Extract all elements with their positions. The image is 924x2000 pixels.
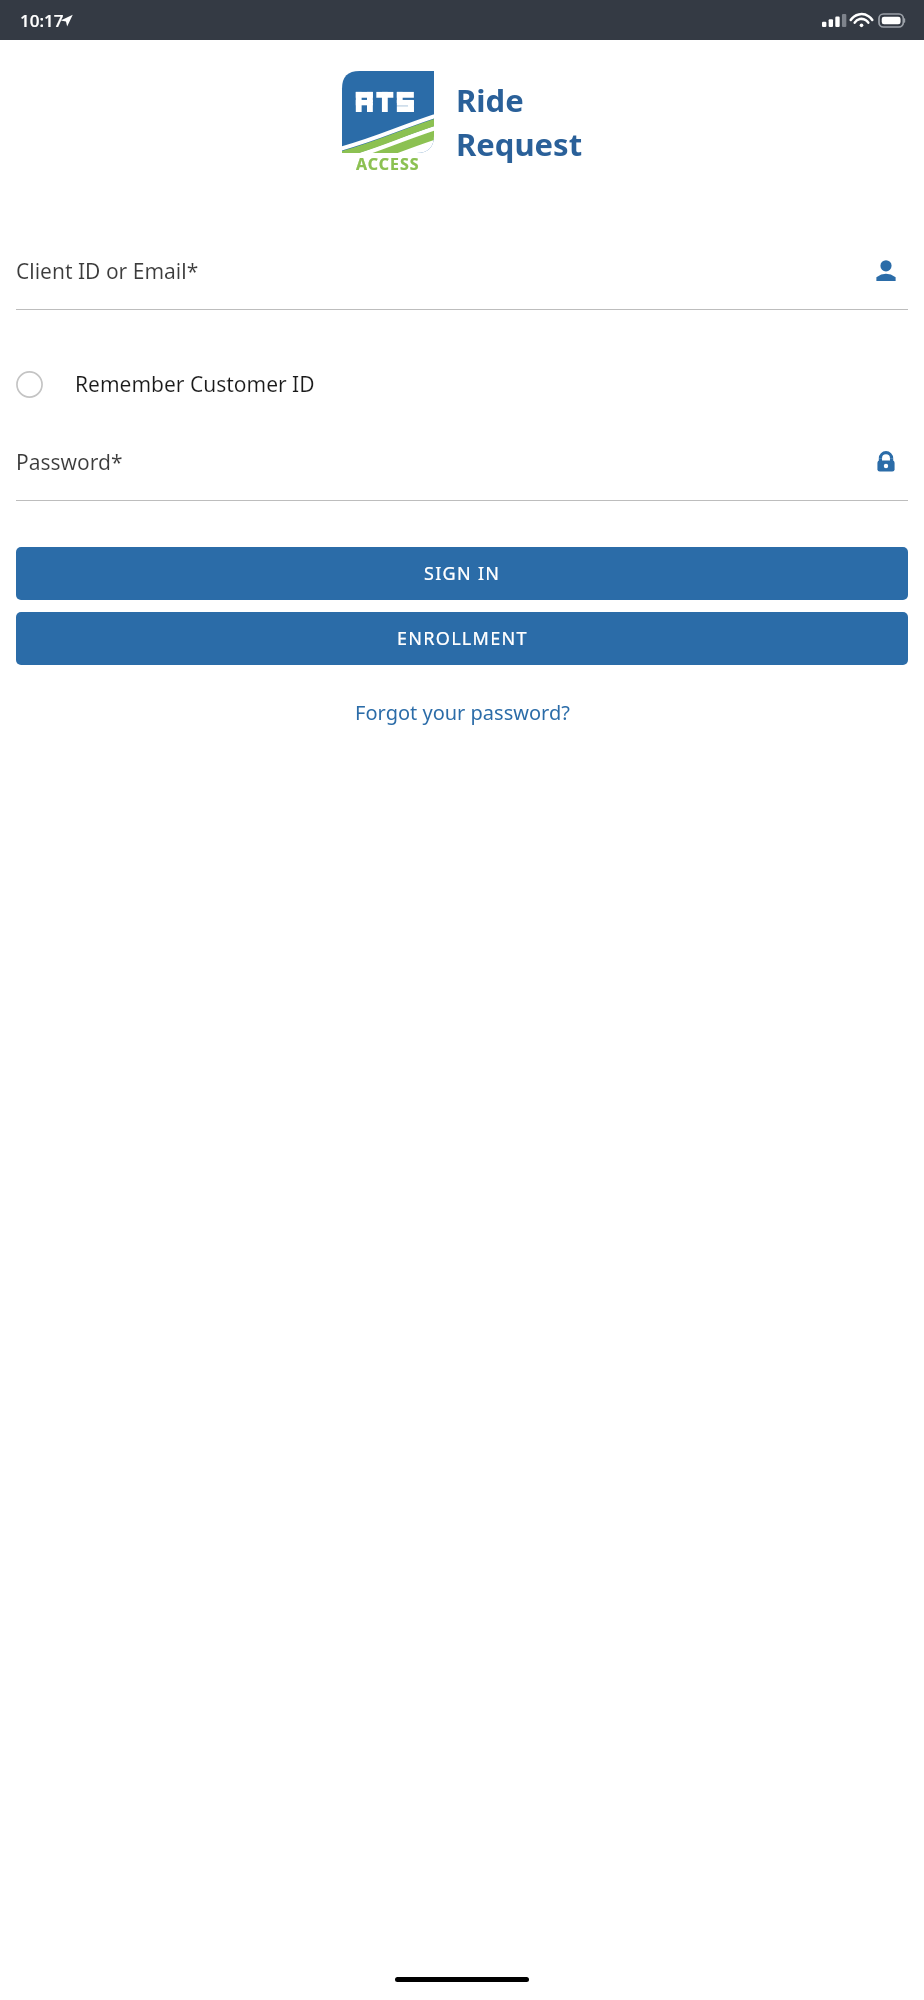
staticText: Request xyxy=(456,123,583,165)
staticText: 10:17 xyxy=(20,9,64,32)
other: User xyxy=(873,258,899,284)
button[interactable]: Forgot your password? xyxy=(341,693,584,732)
button[interactable]: Password* xyxy=(16,436,908,501)
button[interactable]: ENROLLMENT xyxy=(16,612,908,665)
staticText: Password* xyxy=(16,448,873,477)
staticText: ENROLLMENT xyxy=(397,626,528,651)
staticText: Client ID or Email* xyxy=(16,257,873,286)
staticText: ACCESS xyxy=(356,153,420,175)
staticText: Forgot your password? xyxy=(355,699,570,726)
button[interactable]: Client ID or Email* xyxy=(16,245,908,310)
staticText: Remember Customer ID xyxy=(75,370,315,399)
staticText: Ride xyxy=(456,79,524,121)
other: Password xyxy=(873,449,899,475)
button[interactable]: SIGN IN xyxy=(16,547,908,600)
staticText: SIGN IN xyxy=(424,561,501,586)
button[interactable]: Remember Customer ID xyxy=(16,362,908,406)
